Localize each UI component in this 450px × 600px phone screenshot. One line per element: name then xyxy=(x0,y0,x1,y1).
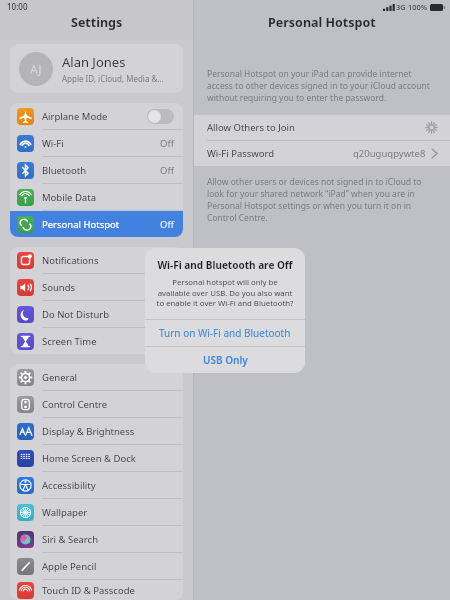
button[interactable]: Apple Pencil xyxy=(10,553,183,579)
button[interactable]: Airplane Mode xyxy=(10,103,183,129)
staticText: Mobile Data xyxy=(42,191,174,204)
staticText: Control Centre xyxy=(42,398,174,411)
button[interactable]: Siri & Search xyxy=(10,526,183,552)
button[interactable]: Touch ID & Passcode xyxy=(10,580,183,600)
button[interactable]: Personal Hotspot xyxy=(10,211,183,237)
staticText: Accessibility xyxy=(42,479,174,492)
staticText: Allow other users or devices not signed … xyxy=(207,176,437,224)
button[interactable]: Screen Time xyxy=(10,328,183,354)
staticText: 100% xyxy=(408,2,428,12)
staticText: Allow Others to Join xyxy=(207,121,426,134)
staticText: USB Only xyxy=(203,353,248,367)
staticText: Off xyxy=(160,218,174,231)
staticText: Display & Brightness xyxy=(42,425,174,438)
staticText: Settings xyxy=(71,14,123,31)
button[interactable]: USB Only xyxy=(145,347,305,373)
staticText: Sounds xyxy=(42,281,174,294)
staticText: Do Not Disturb xyxy=(42,308,174,321)
staticText: Off xyxy=(160,137,174,150)
button[interactable]: AJ xyxy=(10,44,183,93)
staticText: Wallpaper xyxy=(42,506,174,519)
button[interactable]: Wi-Fi Password xyxy=(194,141,450,166)
button[interactable]: Mobile Data xyxy=(10,184,183,210)
staticText: 10:00 xyxy=(7,1,28,12)
staticText: AJ xyxy=(30,61,42,77)
staticText: Turn on Wi-Fi and Bluetooth xyxy=(159,326,291,340)
button[interactable]: Notifications xyxy=(10,247,183,273)
button[interactable]: Accessibility xyxy=(10,472,183,498)
staticText: Wi-Fi and Bluetooth are Off xyxy=(156,258,294,272)
staticText: Notifications xyxy=(42,254,174,267)
staticText: Wi-Fi Password xyxy=(207,147,353,160)
staticText: Siri & Search xyxy=(42,533,174,546)
staticText: Apple Pencil xyxy=(42,560,174,573)
button[interactable]: Home Screen & Dock xyxy=(10,445,183,471)
button[interactable]: Sounds xyxy=(10,274,183,300)
staticText: Personal Hotspot xyxy=(268,14,376,31)
staticText: Off xyxy=(160,164,174,177)
button[interactable]: Control Centre xyxy=(10,391,183,417)
button[interactable]: Do Not Disturb xyxy=(10,301,183,327)
staticText: Touch ID & Passcode xyxy=(42,584,174,597)
button[interactable]: Airplane Mode toggle xyxy=(147,109,174,124)
button[interactable]: Display & Brightness xyxy=(10,418,183,444)
staticText: Apple ID, iCloud, Media &… xyxy=(62,73,164,84)
button[interactable]: Bluetooth xyxy=(10,157,183,183)
button[interactable]: Turn on Wi-Fi and Bluetooth xyxy=(145,320,305,346)
button[interactable]: Wi-Fi xyxy=(10,130,183,156)
staticText: Airplane Mode xyxy=(42,110,147,123)
staticText: Wi-Fi xyxy=(42,137,160,150)
button[interactable]: Wallpaper xyxy=(10,499,183,525)
button[interactable]: Allow Others to Join xyxy=(194,115,450,140)
staticText: Alan Jones xyxy=(62,53,126,71)
staticText: Home Screen & Dock xyxy=(42,452,174,465)
staticText: Personal hotspot will only be available … xyxy=(156,277,294,309)
button[interactable]: General xyxy=(10,364,183,390)
staticText: Screen Time xyxy=(42,335,174,348)
staticText: 3G xyxy=(396,2,406,12)
staticText: General xyxy=(42,371,174,384)
staticText: q20uguqpywte8 xyxy=(353,147,426,160)
staticText: Personal Hotspot xyxy=(42,218,160,231)
staticText: Bluetooth xyxy=(42,164,160,177)
staticText: Personal Hotspot on your iPad can provid… xyxy=(207,68,437,104)
